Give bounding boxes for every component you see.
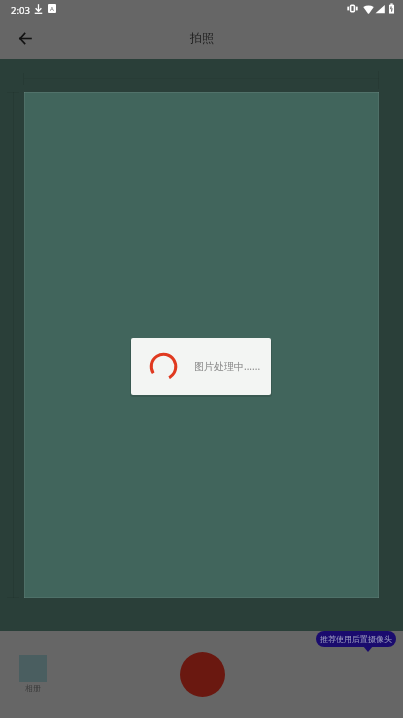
staticText: 图片处理中...... xyxy=(194,359,261,373)
button[interactable]: 相册 xyxy=(19,655,47,693)
staticText: 拍照 xyxy=(190,30,214,45)
staticText: 相册 xyxy=(25,683,41,693)
staticText: 2:03 xyxy=(11,4,30,17)
staticText: 推荐使用后置摄像头 xyxy=(320,634,392,644)
button[interactable]: 拍照 xyxy=(180,652,225,697)
button[interactable]: 推荐使用后置摄像头 xyxy=(316,631,396,647)
button[interactable]: 返回 xyxy=(10,23,40,53)
staticText: A xyxy=(50,5,54,13)
